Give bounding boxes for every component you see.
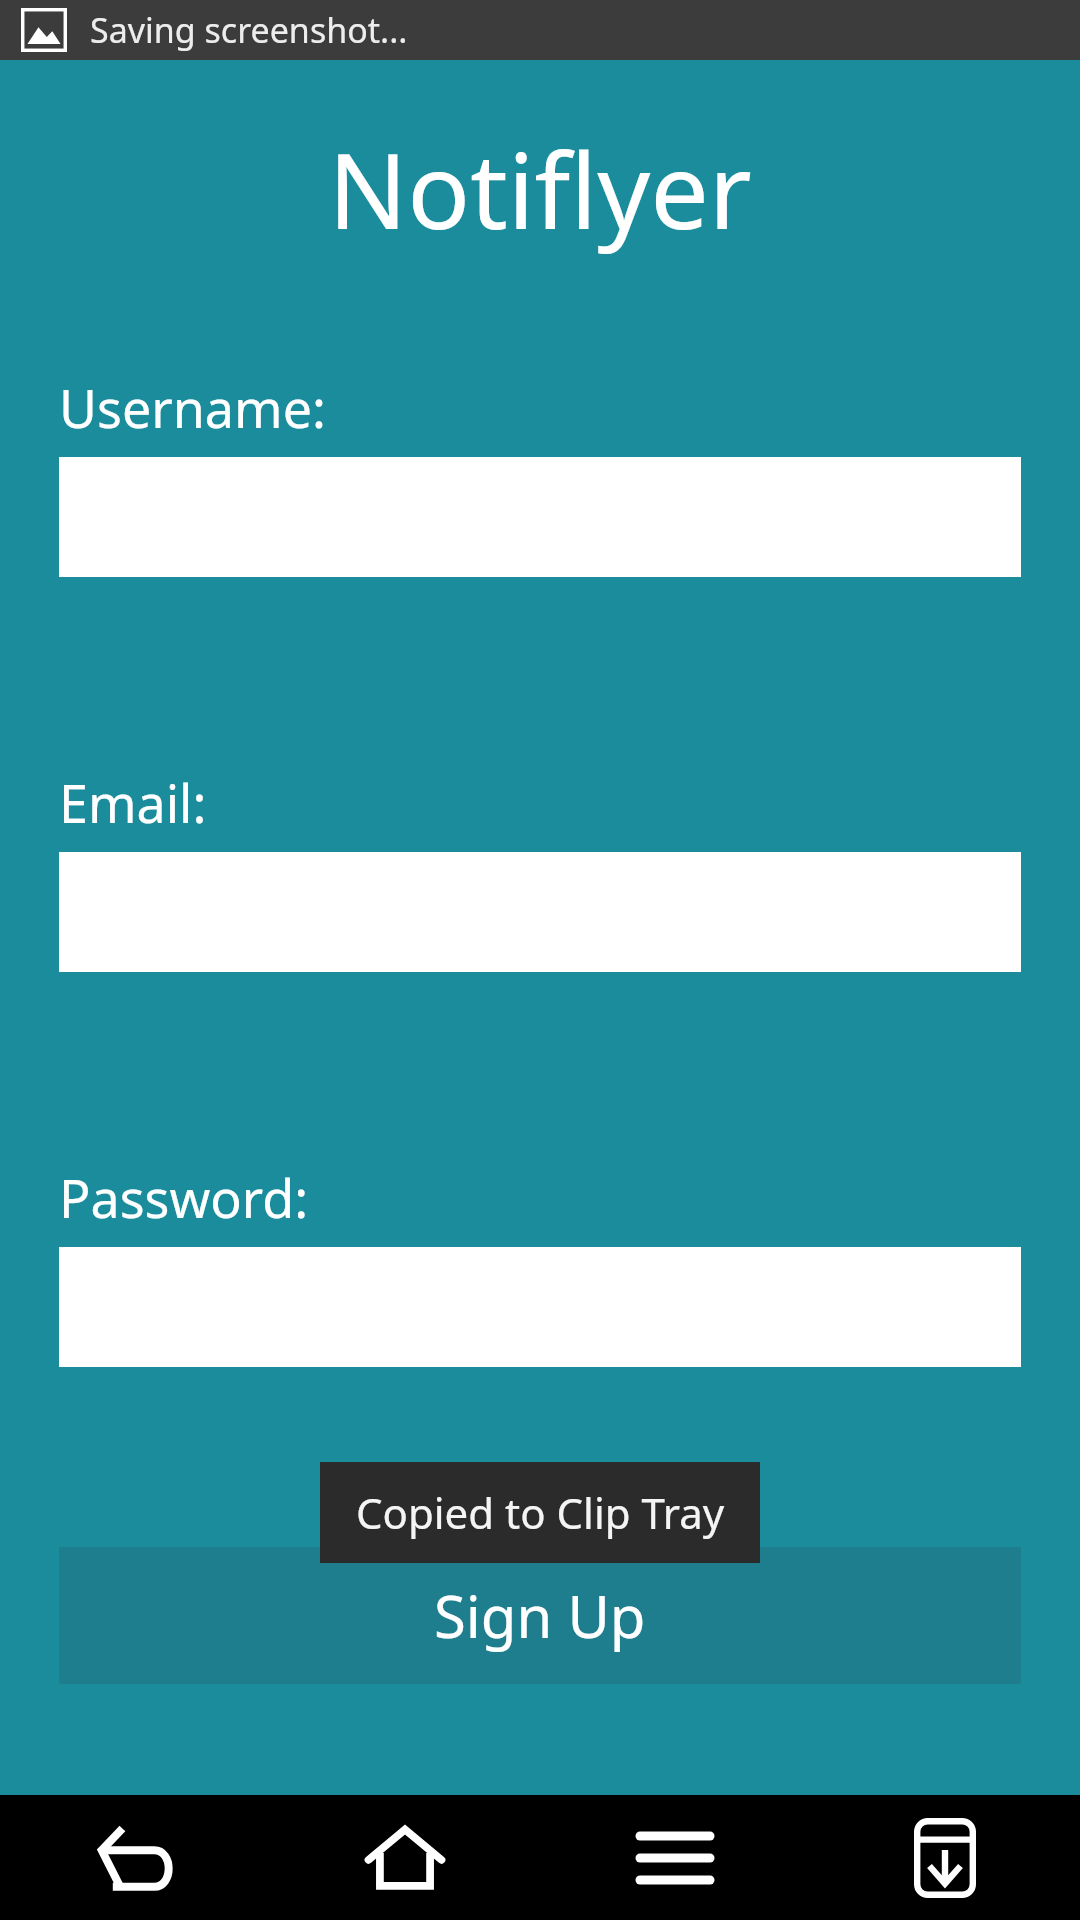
button[interactable]: Recent apps — [540, 1795, 810, 1920]
button[interactable]: Back — [0, 1795, 270, 1920]
staticText: Copied to Clip Tray — [356, 1484, 725, 1541]
staticText: Saving screenshot... — [90, 7, 408, 53]
staticText: Sign Up — [434, 1576, 646, 1655]
button[interactable]: Sign Up — [59, 1547, 1021, 1684]
staticText: Email: — [59, 767, 207, 838]
staticText: Password: — [59, 1162, 309, 1233]
button[interactable]: Home — [270, 1795, 540, 1920]
staticText: Notiflyer — [0, 118, 1080, 260]
staticText: Username: — [59, 372, 326, 443]
button[interactable]: Capture plus — [810, 1795, 1080, 1920]
